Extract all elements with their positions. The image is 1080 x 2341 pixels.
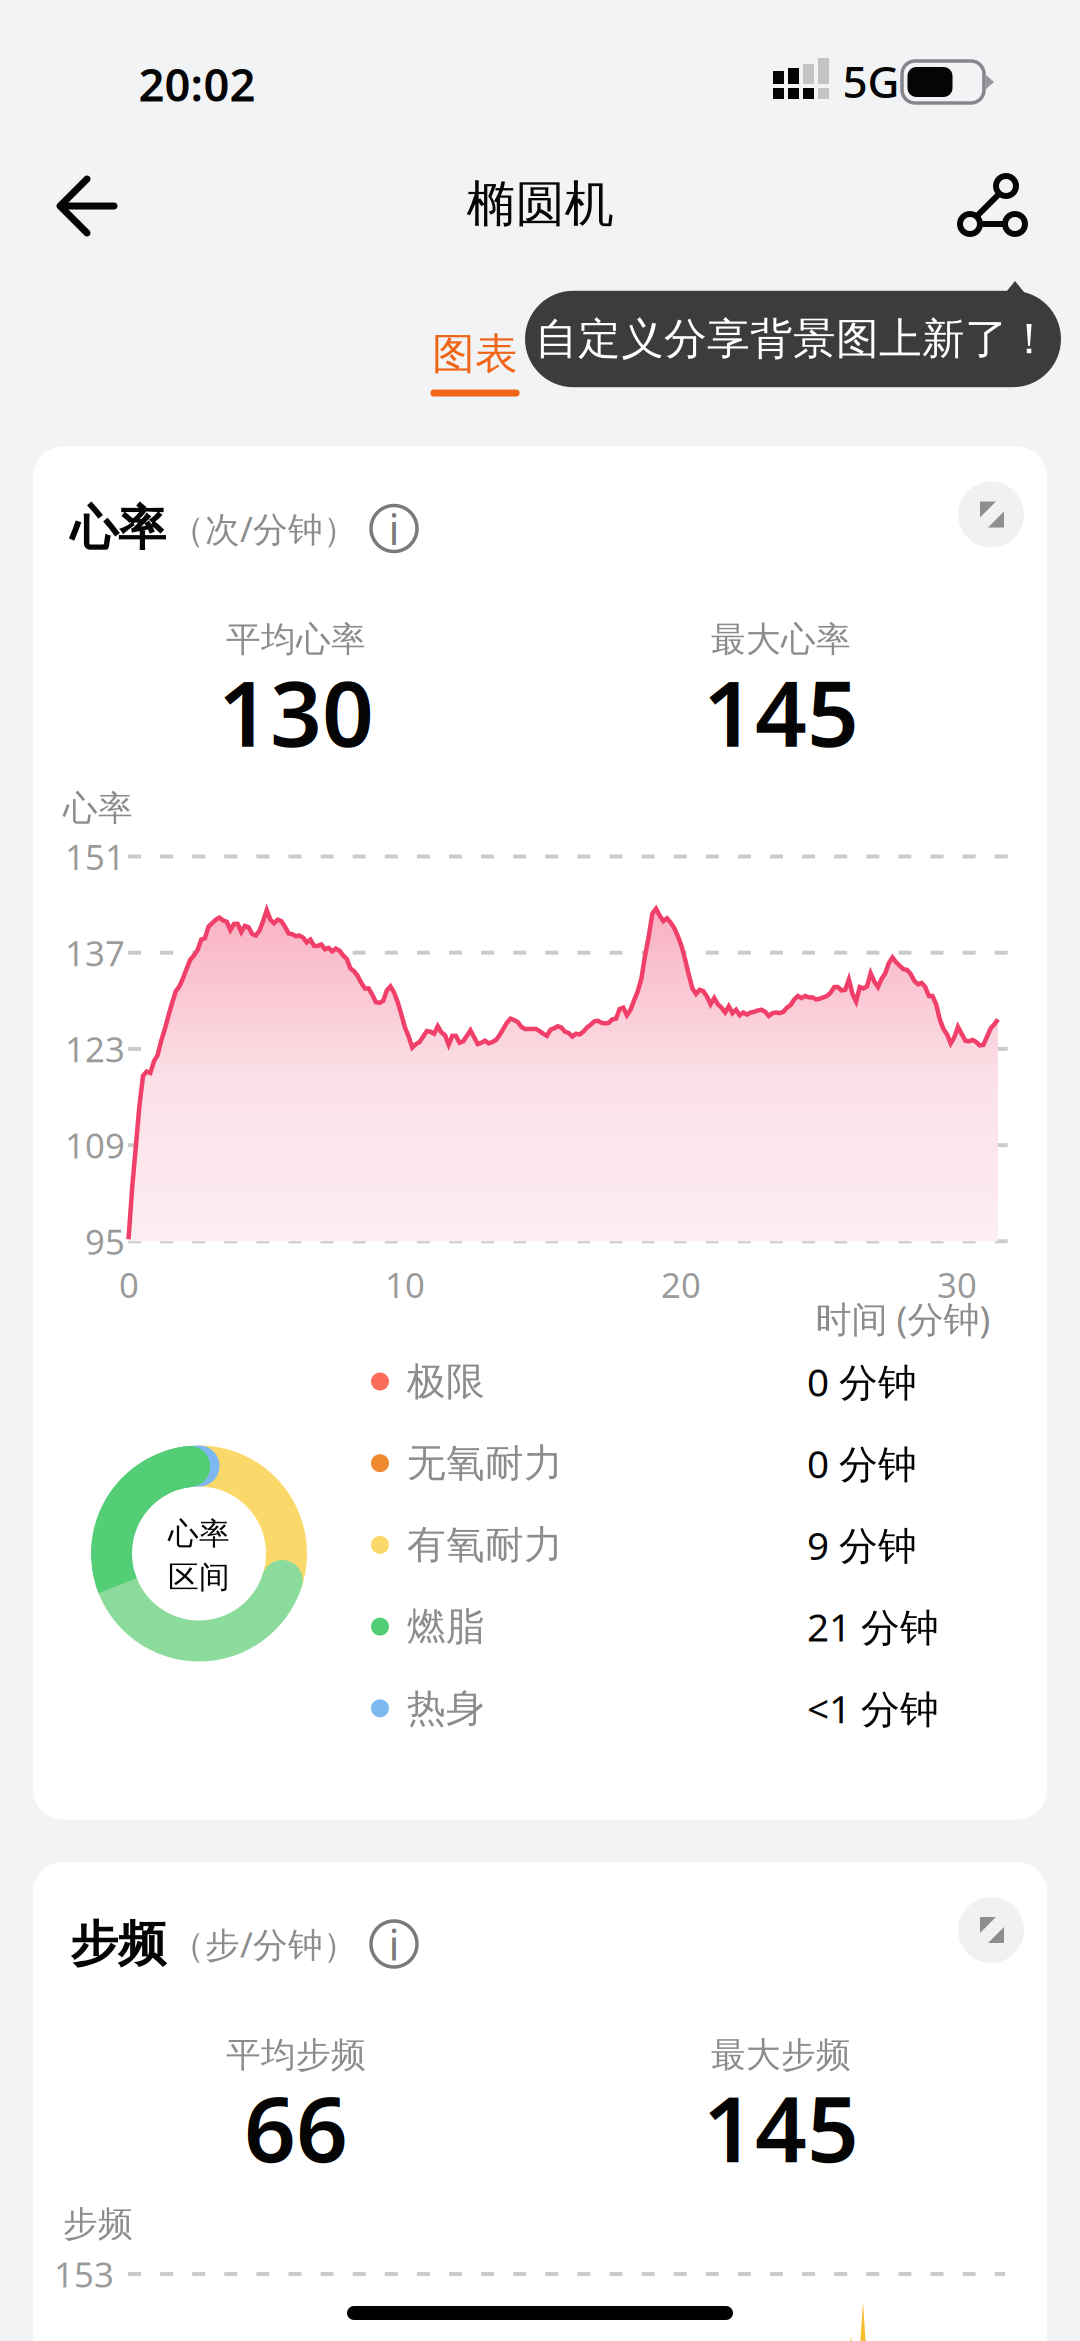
- staticText: 心率: [168, 1515, 230, 1552]
- staticText: 心率: [70, 499, 166, 558]
- staticText: 最大心率: [711, 618, 851, 661]
- staticText: 20:02: [138, 54, 255, 114]
- staticText: 区间: [168, 1558, 230, 1596]
- staticText: 9 分钟: [807, 1519, 917, 1570]
- staticText: i: [388, 1916, 399, 1972]
- button[interactable]: 图表: [390, 292, 560, 412]
- button[interactable]: 说明: [358, 492, 430, 564]
- staticText: <1 分钟: [807, 1683, 939, 1734]
- staticText: 30: [937, 1261, 977, 1307]
- staticText: 步频: [63, 2203, 133, 2245]
- button[interactable]: 全屏查看步频图: [946, 1885, 1036, 1975]
- staticText: 极限: [407, 1358, 485, 1405]
- button[interactable]: 说明: [358, 1908, 430, 1980]
- staticText: 平均步频: [226, 2034, 366, 2076]
- staticText: 0: [119, 1261, 139, 1307]
- staticText: 步频: [70, 1914, 166, 1973]
- button[interactable]: 详情: [560, 292, 730, 412]
- staticText: 95: [85, 1218, 125, 1264]
- staticText: 10: [385, 1261, 425, 1307]
- staticText: 109: [65, 1122, 125, 1168]
- button[interactable]: 分享: [934, 146, 1054, 266]
- staticText: 66: [244, 2067, 348, 2187]
- staticText: 0 分钟: [807, 1437, 917, 1489]
- staticText: 最大步频: [711, 2034, 851, 2076]
- staticText: 130: [218, 651, 374, 772]
- staticText: （步/分钟）: [170, 1921, 358, 1967]
- button[interactable]: 返回: [28, 146, 148, 266]
- staticText: 123: [65, 1026, 125, 1072]
- staticText: 无氧耐力: [407, 1439, 563, 1487]
- staticText: 151: [65, 833, 125, 879]
- staticText: 图表: [432, 328, 518, 380]
- staticText: 燃脂: [407, 1603, 485, 1650]
- staticText: 时间 (分钟): [815, 1295, 990, 1342]
- staticText: 自定义分享背景图上新了！: [535, 313, 1051, 365]
- staticText: 5G: [842, 52, 899, 110]
- staticText: 热身: [407, 1685, 485, 1732]
- staticText: 21 分钟: [807, 1601, 939, 1652]
- staticText: 153: [54, 2251, 114, 2297]
- staticText: 20: [661, 1261, 701, 1307]
- staticText: 详情: [602, 328, 688, 380]
- staticText: （次/分钟）: [170, 505, 358, 551]
- staticText: 145: [703, 2067, 859, 2187]
- staticText: i: [388, 500, 399, 557]
- staticText: 椭圆机: [466, 174, 613, 234]
- staticText: 145: [703, 651, 859, 772]
- staticText: 心率: [63, 787, 133, 830]
- staticText: 有氧耐力: [407, 1521, 563, 1569]
- staticText: 137: [65, 930, 125, 976]
- staticText: 0 分钟: [807, 1356, 917, 1407]
- button[interactable]: 全屏查看心率图: [946, 469, 1036, 559]
- staticText: 平均心率: [226, 618, 366, 661]
